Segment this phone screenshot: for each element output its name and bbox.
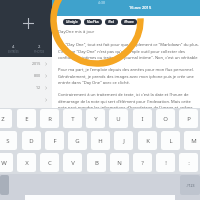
button[interactable]: W bbox=[0, 153, 13, 172]
staticText: MacPlus bbox=[87, 20, 99, 24]
button[interactable]: O bbox=[156, 109, 175, 128]
button[interactable]: Y bbox=[86, 109, 105, 128]
button[interactable]: 800 bbox=[0, 69, 52, 81]
staticText: 4 bbox=[12, 44, 15, 50]
staticText: S bbox=[6, 137, 10, 145]
staticText: O bbox=[163, 115, 168, 123]
staticText: ! bbox=[165, 159, 167, 167]
staticText: 12 bbox=[36, 85, 41, 90]
staticText: DayOne mis à jour bbox=[58, 29, 95, 35]
staticText: X bbox=[25, 159, 29, 167]
staticText: V bbox=[71, 159, 75, 167]
staticText: M bbox=[191, 137, 197, 145]
staticText: D bbox=[29, 137, 34, 145]
button[interactable] bbox=[0, 105, 52, 117]
button[interactable]: N bbox=[110, 153, 129, 172]
button[interactable]: K bbox=[138, 131, 157, 150]
button[interactable]: M bbox=[184, 131, 200, 150]
button[interactable]: T bbox=[63, 109, 82, 128]
button[interactable]: ? bbox=[133, 153, 152, 172]
button[interactable]: H bbox=[91, 131, 110, 150]
staticText: L bbox=[169, 137, 173, 145]
button[interactable]: V bbox=[63, 153, 82, 172]
staticText: ENTRÉES bbox=[8, 50, 19, 54]
staticText: G bbox=[75, 137, 80, 145]
staticText: I bbox=[141, 115, 144, 123]
button[interactable]: iPad bbox=[105, 19, 118, 25]
staticText: .?123 bbox=[186, 183, 195, 188]
staticText: R bbox=[48, 115, 52, 123]
button[interactable]: Lifestyle bbox=[63, 19, 81, 25]
staticText: iPad bbox=[108, 20, 115, 24]
staticText: H bbox=[98, 137, 103, 145]
button[interactable]: .?123 bbox=[180, 175, 200, 195]
staticText: Pour ma part, je l'emploie depuis des an… bbox=[58, 67, 200, 85]
staticText: : bbox=[188, 159, 190, 167]
staticText: Y bbox=[94, 115, 98, 123]
staticText: N bbox=[117, 159, 122, 167]
button[interactable]: 12 bbox=[0, 81, 52, 93]
staticText: Z bbox=[1, 115, 5, 123]
staticText: U bbox=[116, 115, 121, 123]
staticText: E bbox=[25, 115, 29, 123]
staticText: iPhone bbox=[124, 20, 134, 24]
button[interactable]: ! bbox=[156, 153, 175, 172]
button[interactable]: U bbox=[109, 109, 128, 128]
staticText: P bbox=[187, 115, 191, 123]
staticText: 16 avr. 2015 bbox=[129, 5, 152, 10]
staticText: 4:38 bbox=[98, 0, 105, 5]
staticText: ? bbox=[141, 159, 144, 167]
button[interactable]: D bbox=[22, 131, 41, 150]
button[interactable]: X bbox=[17, 153, 36, 172]
button[interactable]: C bbox=[40, 153, 59, 172]
button[interactable]: J bbox=[114, 131, 133, 150]
button[interactable]: L bbox=[161, 131, 180, 150]
staticText: C bbox=[48, 159, 52, 167]
staticText: Contrairement à un traitement de texte, … bbox=[58, 92, 200, 116]
button[interactable]: G bbox=[68, 131, 87, 150]
button[interactable]: E bbox=[17, 109, 36, 128]
button[interactable]: S bbox=[0, 131, 17, 150]
button[interactable]: iPhone bbox=[121, 19, 137, 25]
staticText: W bbox=[1, 159, 7, 167]
button[interactable]: MacPlus bbox=[84, 19, 102, 25]
button[interactable]: 2015 bbox=[0, 57, 52, 69]
staticText: Sur "Day One", tout est fait pour que si… bbox=[58, 42, 200, 60]
staticText: PHOTOS bbox=[34, 50, 45, 54]
staticText: J bbox=[123, 137, 125, 145]
staticText: F bbox=[53, 137, 57, 145]
button[interactable]: Change keyboard bbox=[0, 175, 9, 195]
button[interactable]: P bbox=[179, 109, 198, 128]
button[interactable]: I bbox=[133, 109, 152, 128]
staticText: Lifestyle bbox=[66, 20, 78, 24]
staticText: 2015 bbox=[32, 61, 41, 66]
staticText: K bbox=[146, 137, 150, 145]
button[interactable]: B bbox=[87, 153, 106, 172]
button[interactable]: R bbox=[40, 109, 59, 128]
staticText: 2 bbox=[38, 44, 41, 50]
staticText: B bbox=[95, 159, 99, 167]
button[interactable]: F bbox=[45, 131, 64, 150]
button[interactable]: : bbox=[179, 153, 198, 172]
staticText: 800 bbox=[34, 73, 41, 78]
button[interactable]: Z bbox=[0, 109, 12, 128]
staticText: T bbox=[71, 115, 75, 123]
